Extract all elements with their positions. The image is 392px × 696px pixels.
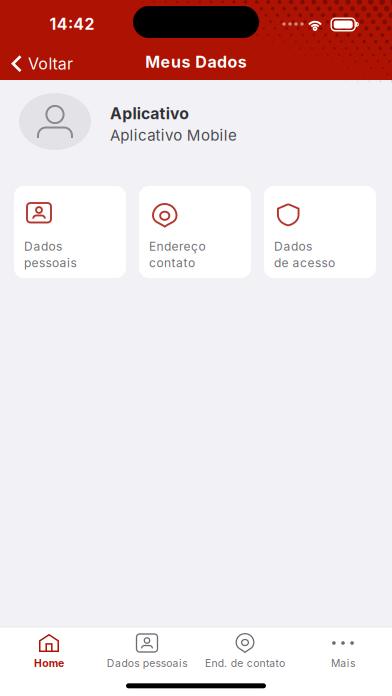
staticText: Endereço <box>149 239 205 253</box>
button[interactable]: Endereço <box>139 186 251 278</box>
staticText: End. de contato <box>205 657 285 670</box>
staticText: Home <box>34 657 64 670</box>
staticText: Dados pessoais <box>107 657 187 670</box>
staticText: Dados <box>24 239 62 253</box>
button[interactable]: End. de contato <box>196 628 294 674</box>
staticText: contato <box>149 255 195 270</box>
button[interactable]: Home <box>0 628 98 674</box>
button[interactable]: Dados pessoais <box>98 628 196 674</box>
button[interactable]: Voltar <box>2 49 82 78</box>
staticText: Voltar <box>28 54 73 73</box>
staticText: Meus Dados <box>145 52 247 72</box>
button[interactable]: Mais <box>294 628 392 674</box>
button[interactable]: Dados <box>264 186 376 278</box>
staticText: 14:42 <box>49 14 95 33</box>
staticText: Mais <box>331 657 355 670</box>
staticText: Dados <box>274 239 312 253</box>
staticText: de acesso <box>274 255 335 270</box>
staticText: pessoais <box>24 255 76 270</box>
button[interactable]: Dados <box>14 186 126 278</box>
staticText: Aplicativo Mobile <box>110 126 237 144</box>
staticText: Aplicativo <box>110 104 189 123</box>
